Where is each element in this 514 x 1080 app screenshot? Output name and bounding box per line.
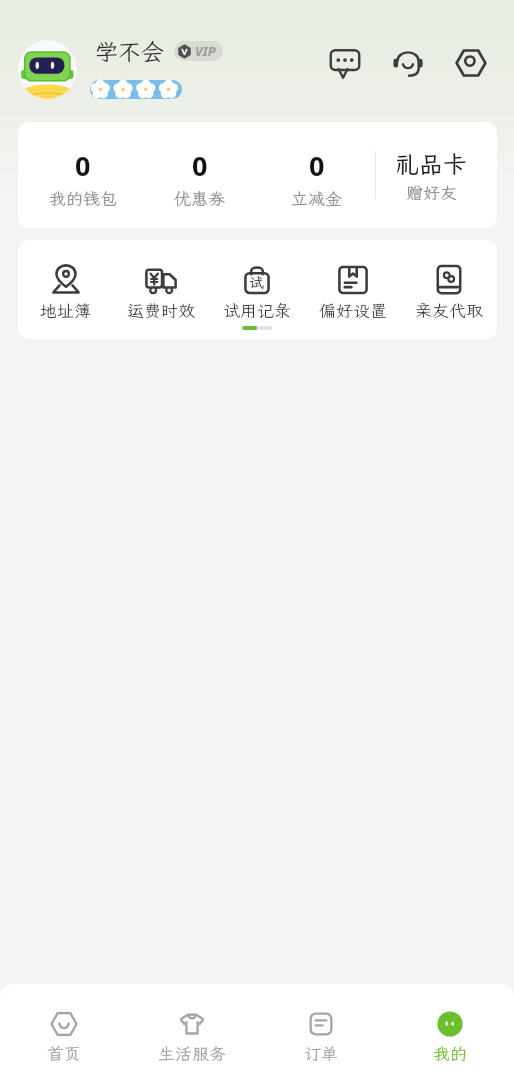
staticText: 礼品卡 bbox=[395, 148, 467, 180]
button[interactable]: Customer service bbox=[390, 45, 426, 81]
button[interactable]: 试 bbox=[209, 240, 305, 339]
button[interactable]: 0 bbox=[25, 122, 141, 228]
button[interactable]: Profile avatar bbox=[18, 40, 77, 99]
staticText: 地址簿 bbox=[40, 299, 91, 321]
staticText: 0 bbox=[75, 147, 91, 184]
staticText: 立减金 bbox=[291, 187, 342, 209]
staticText: 0 bbox=[309, 147, 325, 184]
staticText: 试用记录 bbox=[223, 299, 291, 321]
staticText: 运费时效 bbox=[127, 299, 195, 321]
staticText: 优惠券 bbox=[174, 187, 225, 209]
staticText: 偏好设置 bbox=[319, 299, 387, 321]
button[interactable]: Settings bbox=[453, 45, 489, 81]
button[interactable]: Member level bbox=[90, 80, 182, 99]
button[interactable]: 首页 bbox=[0, 1008, 128, 1066]
button[interactable]: Messages bbox=[327, 45, 363, 81]
staticText: 我的 bbox=[433, 1042, 467, 1064]
staticText: 首页 bbox=[47, 1042, 81, 1064]
staticText: 订单 bbox=[304, 1042, 338, 1064]
staticText: 亲友代取 bbox=[415, 299, 483, 321]
staticText: VIP bbox=[195, 42, 216, 60]
button[interactable]: 偏好设置 bbox=[305, 240, 401, 339]
staticText: 赠好友 bbox=[406, 181, 457, 203]
staticText: 生活服务 bbox=[158, 1042, 226, 1064]
staticText: 试 bbox=[249, 273, 265, 293]
button[interactable]: 0 bbox=[141, 122, 258, 228]
staticText: 我的钱包 bbox=[49, 187, 117, 209]
button[interactable]: 生活服务 bbox=[128, 1008, 256, 1066]
staticText: 学不会 bbox=[95, 36, 164, 66]
button[interactable]: 0 bbox=[258, 122, 375, 228]
staticText: 0 bbox=[192, 147, 208, 184]
button[interactable]: VIP bbox=[174, 41, 223, 61]
button[interactable]: 运费时效 bbox=[113, 240, 209, 339]
button[interactable]: 订单 bbox=[256, 1008, 385, 1066]
button[interactable]: 礼品卡 bbox=[376, 122, 486, 228]
button[interactable]: 地址簿 bbox=[18, 240, 113, 339]
button[interactable]: 我的 bbox=[385, 1008, 514, 1066]
button[interactable]: 亲友代取 bbox=[401, 240, 497, 339]
